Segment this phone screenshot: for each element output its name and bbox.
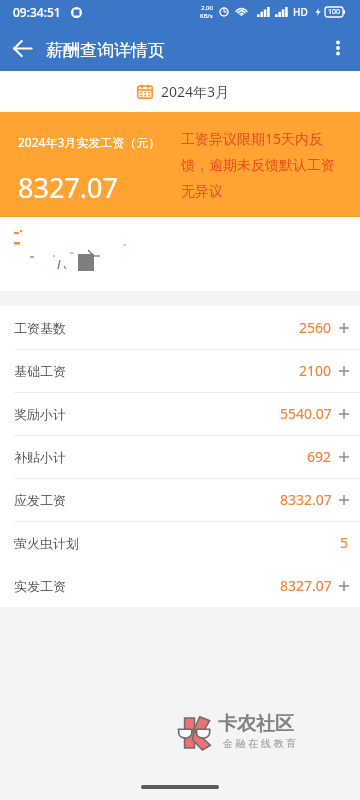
button[interactable]: 工资基数 bbox=[0, 306, 360, 349]
staticText: 金融在线教育 bbox=[223, 737, 299, 750]
staticText: 5540.07 bbox=[280, 404, 332, 423]
button[interactable]: 应发工资 bbox=[0, 478, 360, 521]
button[interactable]: Back bbox=[0, 26, 44, 70]
staticText: 2.00 bbox=[201, 4, 213, 12]
staticText: 工资基数 bbox=[14, 320, 66, 336]
button[interactable]: More options bbox=[316, 26, 360, 70]
staticText: 实发工资 bbox=[14, 578, 66, 594]
staticText: 09:34:51 bbox=[13, 4, 61, 20]
button[interactable]: 实发工资 bbox=[0, 564, 360, 607]
button[interactable]: 补贴小计 bbox=[0, 435, 360, 478]
staticText: 5 bbox=[340, 533, 349, 552]
staticText: 2100 bbox=[299, 361, 332, 380]
button[interactable]: 萤火虫计划 bbox=[0, 521, 360, 564]
staticText: 奖励小计 bbox=[14, 406, 66, 422]
staticText: 工资异议限期15天内反馈，逾期未反馈默认工资无异议 bbox=[181, 129, 341, 201]
staticText: 2024年3月实发工资（元） bbox=[18, 134, 161, 150]
button[interactable]: 基础工资 bbox=[0, 349, 360, 392]
staticText: 8332.07 bbox=[280, 490, 332, 509]
staticText: 2024年3月 bbox=[161, 82, 230, 101]
staticText: 2560 bbox=[299, 318, 332, 337]
staticText: 补贴小计 bbox=[14, 449, 66, 465]
staticText: 应发工资 bbox=[14, 492, 66, 508]
staticText: 692 bbox=[307, 447, 332, 466]
button[interactable]: 奖励小计 bbox=[0, 392, 360, 435]
staticText: 薪酬查询详情页 bbox=[46, 40, 165, 61]
staticText: 基础工资 bbox=[14, 363, 66, 379]
staticText: KB/s bbox=[200, 12, 213, 20]
staticText: 8327.07 bbox=[18, 169, 118, 206]
staticText: 8327.07 bbox=[280, 576, 332, 595]
staticText: 100 bbox=[328, 7, 341, 17]
staticText: 卡农社区 bbox=[218, 712, 294, 736]
staticText: HD bbox=[293, 5, 308, 19]
staticText: 萤火虫计划 bbox=[14, 535, 79, 551]
button[interactable]: 2024年3月 bbox=[0, 71, 360, 112]
